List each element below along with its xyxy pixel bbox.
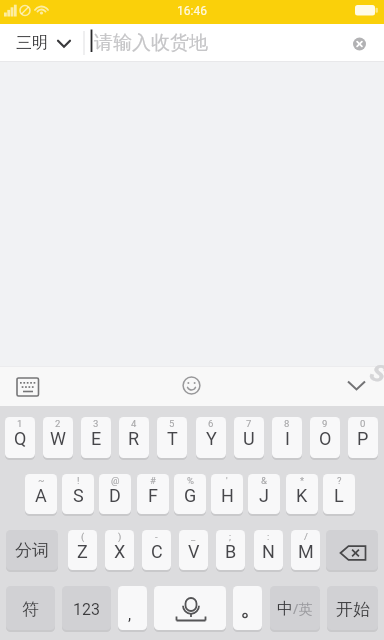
staticText: 分词 [15, 540, 49, 561]
staticText: ' [226, 475, 228, 486]
button[interactable]: @ [99, 474, 131, 514]
staticText: N [262, 541, 275, 562]
button[interactable]: 中/英 [270, 586, 320, 630]
staticText: 2 [55, 418, 61, 429]
button[interactable]: 123 [62, 586, 111, 630]
button[interactable] [154, 586, 226, 630]
staticText: C [151, 541, 163, 562]
staticText: F [148, 485, 158, 506]
button[interactable]: ; [216, 530, 245, 570]
button[interactable]: , [118, 586, 147, 630]
staticText: 3 [93, 418, 99, 429]
button[interactable]: ! [62, 474, 94, 514]
button[interactable]: 三明 [8, 24, 78, 62]
button[interactable]: - [142, 530, 171, 570]
staticText: ( [81, 531, 85, 542]
staticText: I [285, 428, 290, 449]
button[interactable]: 1 [5, 417, 35, 458]
staticText: 开始 [336, 599, 370, 620]
staticText: T [167, 428, 178, 449]
button[interactable]: 6 [196, 417, 226, 458]
button[interactable]: ~ [25, 474, 57, 514]
button[interactable]: 9 [310, 417, 340, 458]
staticText: E [91, 428, 102, 449]
staticText: Z [77, 541, 88, 562]
staticText: 请输入收货地 [94, 31, 208, 55]
button[interactable]: % [174, 474, 206, 514]
staticText: O [319, 428, 332, 449]
staticText: 7 [246, 418, 252, 429]
button[interactable] [175, 369, 209, 403]
staticText: K [296, 485, 308, 506]
staticText: 5 [169, 418, 175, 429]
staticText: 三明 [16, 33, 48, 53]
staticText: L [334, 485, 344, 506]
staticText: Q [14, 428, 27, 449]
button[interactable]: 4 [119, 417, 149, 458]
staticText: 中/英 [277, 599, 313, 619]
staticText: 0 [360, 418, 366, 429]
button[interactable]: 7 [234, 417, 264, 458]
button[interactable]: 符 [6, 586, 55, 630]
button[interactable]: _ [179, 530, 208, 570]
staticText: G [184, 485, 197, 506]
staticText: U [243, 428, 255, 449]
staticText: _ [191, 531, 196, 542]
staticText: D [109, 485, 121, 506]
button[interactable] [326, 530, 378, 570]
staticText: 16:46 [177, 4, 207, 18]
staticText: H [221, 485, 234, 506]
button[interactable]: ) [105, 530, 134, 570]
button[interactable]: * [286, 474, 318, 514]
staticText: ; [229, 531, 232, 542]
staticText: M [298, 541, 314, 562]
button[interactable] [346, 31, 373, 58]
button[interactable]: # [137, 474, 169, 514]
button[interactable]: ( [68, 530, 97, 570]
button[interactable]: : [254, 530, 283, 570]
staticText: * [300, 475, 305, 486]
staticText: : [267, 531, 270, 542]
staticText: R [128, 428, 140, 449]
staticText: - [155, 531, 158, 542]
staticText: 9 [322, 418, 328, 429]
staticText: @ [111, 475, 120, 486]
staticText: ! [77, 475, 80, 486]
staticText: 6 [208, 418, 214, 429]
staticText: B [225, 541, 237, 562]
staticText: Y [206, 428, 217, 449]
staticText: 8 [284, 418, 290, 429]
staticText: S [73, 485, 84, 506]
staticText: W [50, 428, 66, 449]
staticText: ? [337, 475, 342, 486]
staticText: S [365, 357, 384, 389]
button[interactable]: / [291, 530, 320, 570]
button[interactable]: ' [211, 474, 243, 514]
button[interactable]: 5 [157, 417, 187, 458]
button[interactable]: 开始 [327, 586, 378, 630]
button[interactable] [12, 370, 44, 402]
staticText: P [357, 428, 369, 449]
button[interactable] [233, 586, 262, 630]
staticText: / [304, 531, 308, 542]
staticText: , [128, 605, 132, 624]
button[interactable] [340, 372, 372, 400]
staticText: 123 [73, 600, 100, 619]
staticText: & [261, 475, 267, 486]
button[interactable]: 3 [81, 417, 111, 458]
staticText: ~ [38, 475, 45, 486]
button[interactable]: 2 [43, 417, 73, 458]
staticText: # [150, 475, 156, 486]
button[interactable]: 0 [348, 417, 378, 458]
button[interactable]: 8 [272, 417, 302, 458]
staticText: ) [118, 531, 122, 542]
staticText: J [259, 485, 269, 506]
staticText: 1 [17, 418, 23, 429]
staticText: 4 [131, 418, 137, 429]
staticText: X [114, 541, 126, 562]
button[interactable]: & [248, 474, 280, 514]
button[interactable]: ? [323, 474, 355, 514]
button[interactable]: 分词 [6, 530, 58, 570]
staticText: 符 [22, 599, 39, 620]
staticText: A [35, 485, 47, 506]
